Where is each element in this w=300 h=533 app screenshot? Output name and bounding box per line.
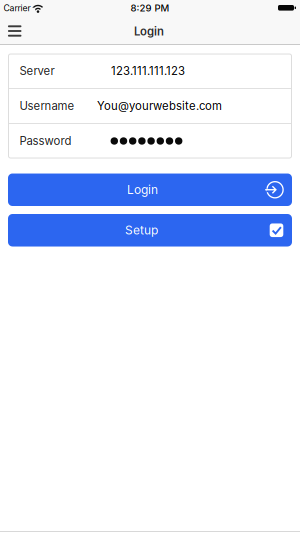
staticText: Server [19, 64, 54, 78]
button[interactable]: Password [8, 123, 292, 158]
staticText: Username [19, 99, 74, 113]
staticText: Password [19, 134, 71, 148]
button[interactable]: Server [8, 53, 292, 88]
staticText: Login [127, 182, 158, 197]
staticText: 8:29 PM [130, 2, 169, 14]
button[interactable]: Setup [8, 214, 292, 246]
button[interactable]: Menu [1, 17, 29, 45]
staticText: Login [134, 25, 164, 38]
staticText: You@yourwebsite.com [97, 99, 222, 113]
staticText: 123.111.111.123 [111, 64, 185, 78]
button[interactable]: Login [8, 173, 292, 206]
staticText: Carrier [3, 3, 30, 13]
staticText: Setup [125, 223, 158, 237]
button[interactable]: Username [8, 88, 292, 123]
